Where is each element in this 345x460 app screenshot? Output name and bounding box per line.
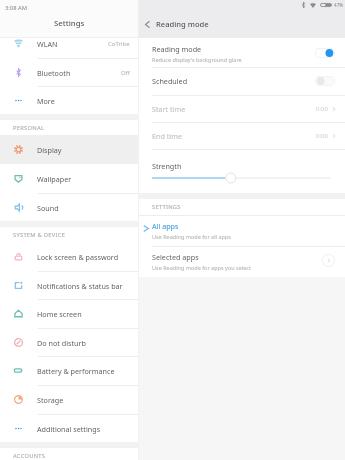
staticText: PERSONAL (13, 124, 45, 132)
button[interactable]: Display (0, 135, 138, 164)
button[interactable]: Battery & performance (0, 356, 138, 385)
staticText: 0:00 (316, 132, 328, 140)
staticText: Settings (54, 18, 85, 29)
staticText: SYSTEM & DEVICE (13, 231, 66, 239)
button[interactable]: End time (138, 122, 345, 149)
staticText: Wallpaper (37, 174, 72, 184)
button[interactable]: Reading mode (138, 38, 345, 68)
staticText: SETTINGS (152, 203, 181, 211)
staticText: Lock screen & password (37, 252, 119, 262)
staticText: Scheduled (152, 76, 188, 86)
staticText: 3:08 AM (5, 4, 27, 12)
staticText: Selected apps (152, 252, 199, 262)
staticText: Sound (37, 203, 59, 213)
button[interactable]: Selected apps (138, 246, 345, 277)
button[interactable]: Lock screen & password (0, 242, 138, 271)
button[interactable]: Storage (0, 385, 138, 414)
staticText: Bluetooth (37, 68, 71, 78)
staticText: Notifications & status bar (37, 281, 123, 291)
button[interactable]: All apps (138, 215, 345, 246)
staticText: ACCOUNTS (13, 452, 46, 460)
staticText: Strength (152, 161, 182, 171)
staticText: Battery & performance (37, 366, 115, 376)
staticText: End time (152, 131, 316, 141)
staticText: Off (121, 69, 130, 77)
staticText: Reading mode (152, 44, 202, 54)
staticText: Use Reading mode for apps you select (152, 264, 251, 271)
staticText: Start time (152, 104, 316, 114)
button[interactable]: Sound (0, 193, 138, 222)
staticText: Display (37, 145, 62, 155)
button[interactable]: Turn off (315, 48, 335, 58)
staticText: Storage (37, 395, 64, 405)
staticText: 47% (334, 2, 344, 8)
button[interactable]: Bluetooth (0, 58, 138, 87)
staticText: All apps (152, 221, 179, 231)
button[interactable]: WLAN (0, 29, 138, 58)
staticText: Use Reading mode for all apps (152, 233, 231, 240)
staticText: CoTribe (108, 40, 130, 48)
button[interactable]: Turn on (315, 76, 335, 86)
button[interactable]: Scheduled (138, 67, 345, 95)
staticText: WLAN (37, 39, 58, 49)
button[interactable]: Do not disturb (0, 328, 138, 357)
staticText: Do not disturb (37, 338, 86, 348)
staticText: More (37, 96, 55, 106)
staticText: Reading mode (156, 19, 209, 29)
staticText: 0:00 (316, 105, 328, 113)
staticText: Home screen (37, 309, 82, 319)
button[interactable]: Notifications & status bar (0, 271, 138, 300)
button[interactable]: Start time (138, 95, 345, 122)
staticText: Reduce display's background glare (152, 56, 242, 63)
button[interactable]: More (0, 86, 138, 115)
button[interactable]: Additional settings (0, 414, 138, 443)
staticText: Additional settings (37, 424, 101, 434)
button[interactable]: Wallpaper (0, 164, 138, 193)
button[interactable]: Strength slider (138, 171, 345, 185)
button[interactable]: Home screen (0, 299, 138, 328)
button[interactable]: Back (138, 13, 157, 36)
